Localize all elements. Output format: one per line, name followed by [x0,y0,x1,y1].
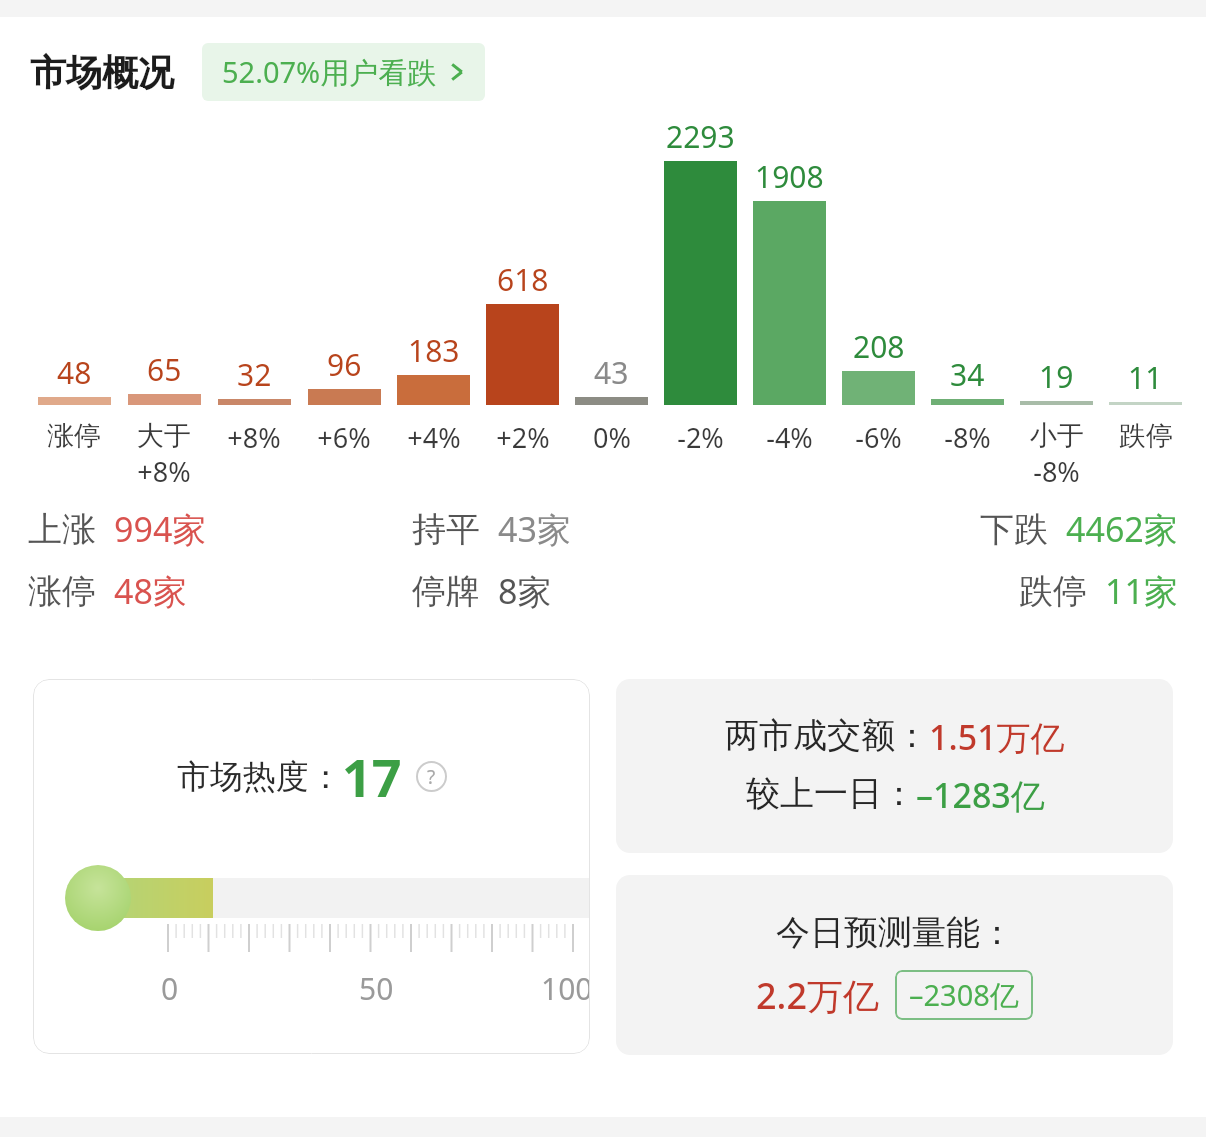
staticText: 43 [594,352,629,393]
staticText: 今日预测量能： [776,911,1014,954]
staticText: 100 [541,968,590,1009]
staticText: 32 [237,354,272,395]
staticText: 34 [950,354,985,395]
staticText: –2308亿 [909,975,1019,1015]
staticText: 2.2万亿 [756,971,879,1020]
staticText: 50 [359,968,394,1009]
staticText: -8% [1033,453,1080,490]
staticText: 市场概况 [30,50,174,95]
staticText: +2% [496,419,550,456]
staticText: 小于 [1030,419,1084,453]
staticText: 市场热度： [177,756,342,798]
staticText: -4% [766,419,813,456]
staticText: 994家 [114,506,207,552]
staticText: 涨停 [47,419,101,453]
staticText: -6% [855,419,902,456]
staticText: 下跌 [980,508,1048,551]
staticText: 跌停 [1119,419,1173,453]
staticText: 较上一日： [746,772,916,815]
staticText: -2% [677,419,724,456]
staticText: 上涨 [28,508,96,551]
staticText: 两市成交额： [725,714,929,757]
staticText: ? [427,764,436,790]
staticText: +8% [137,453,191,490]
button[interactable]: 两市成交额： [616,679,1173,853]
staticText: 19 [1039,356,1074,397]
staticText: 48家 [114,568,187,614]
staticText: 17 [342,741,402,812]
staticText: 183 [408,330,460,371]
staticText: 96 [327,344,362,385]
staticText: 涨停 [28,570,96,613]
staticText: 0% [593,419,631,456]
staticText: 52.07%用户看跌 [222,52,437,92]
staticText: 持平 [412,508,480,551]
staticText: 2293 [666,116,735,157]
staticText: 8家 [498,568,552,614]
staticText: 11家 [1105,568,1178,614]
staticText: +8% [227,419,281,456]
staticText: 65 [147,349,182,390]
staticText: -8% [944,419,991,456]
staticText: 208 [853,326,905,367]
button[interactable]: 52.07%用户看跌 [202,43,485,101]
staticText: 大于 [137,419,191,453]
staticText: 0 [161,968,179,1009]
staticText: 1.51万亿 [929,714,1065,760]
button[interactable]: 市场热度： [33,679,590,1054]
staticText: 11 [1128,357,1163,398]
staticText: +6% [317,419,371,456]
staticText: 43家 [498,506,571,552]
button[interactable]: 帮助 [416,761,447,792]
staticText: 跌停 [1019,570,1087,613]
staticText: 618 [497,259,549,300]
staticText: 48 [57,352,92,393]
staticText: –1283亿 [916,772,1045,818]
staticText: 1908 [755,156,824,197]
staticText: 停牌 [412,570,480,613]
staticText: 4462家 [1066,506,1178,552]
staticText: +4% [407,419,461,456]
button[interactable]: 今日预测量能： [616,875,1173,1055]
